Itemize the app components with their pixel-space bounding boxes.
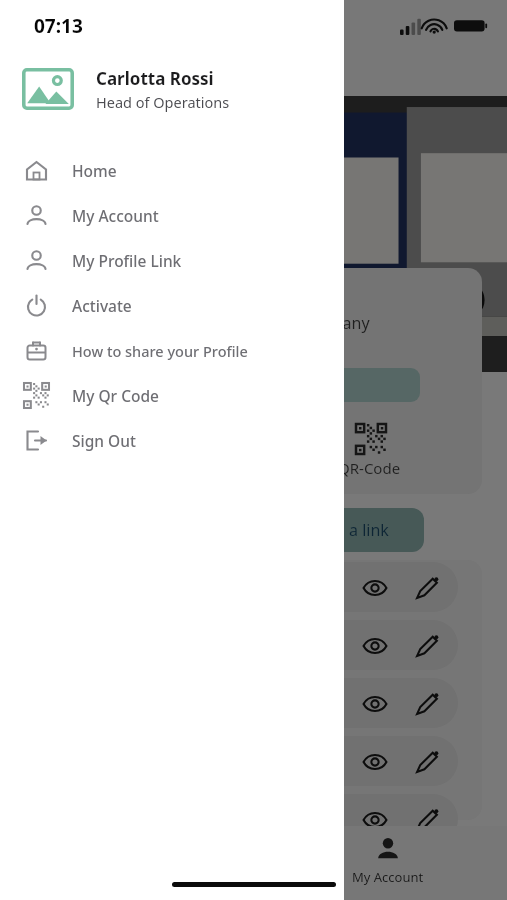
button[interactable]: Carlotta Rossi bbox=[20, 66, 344, 112]
button[interactable]: Preview link bbox=[250, 736, 458, 786]
staticText: My Account bbox=[72, 205, 159, 226]
button[interactable]: My Profile Link bbox=[0, 238, 344, 283]
button[interactable]: Preview link bbox=[362, 691, 388, 717]
staticText: How to share your Profile bbox=[72, 341, 248, 361]
button[interactable]: Add a link bbox=[280, 508, 424, 552]
button[interactable]: Edit link bbox=[414, 807, 440, 833]
button[interactable]: Home bbox=[0, 148, 344, 193]
staticText: Add a link bbox=[315, 519, 389, 541]
button[interactable]: Preview link bbox=[250, 562, 458, 612]
button[interactable]: Sign Out bbox=[0, 418, 344, 463]
staticText: My Account bbox=[352, 868, 424, 886]
button[interactable]: My Account bbox=[352, 836, 424, 886]
button[interactable]: How to share your Profile bbox=[0, 328, 344, 373]
button[interactable]: Preview link bbox=[250, 794, 458, 844]
button[interactable]: Preview link bbox=[362, 575, 388, 601]
staticText: Carlotta Rossi bbox=[96, 67, 214, 90]
staticText: 07:13 bbox=[34, 13, 83, 39]
staticText: Activate bbox=[72, 295, 132, 316]
button[interactable]: Preview link bbox=[362, 633, 388, 659]
button[interactable]: Preview link bbox=[250, 678, 458, 728]
staticText: Company bbox=[298, 312, 370, 334]
button[interactable]: Edit link bbox=[414, 575, 440, 601]
button[interactable]: Activate bbox=[0, 283, 344, 328]
button[interactable] bbox=[290, 368, 420, 402]
staticText: My Qr Code bbox=[72, 385, 160, 406]
button[interactable]: My Qr Code bbox=[0, 373, 344, 418]
button[interactable]: My Account bbox=[0, 193, 344, 238]
button[interactable]: Edit link bbox=[414, 749, 440, 775]
staticText: QR-Code bbox=[338, 458, 401, 478]
staticText: Sign Out bbox=[72, 430, 136, 451]
button[interactable]: Preview link bbox=[362, 749, 388, 775]
button[interactable]: Edit link bbox=[414, 691, 440, 717]
staticText: Home bbox=[72, 160, 117, 181]
staticText: My Profile Link bbox=[72, 250, 182, 271]
button[interactable]: Edit link bbox=[414, 633, 440, 659]
staticText: Head of Operations bbox=[96, 92, 230, 112]
button[interactable]: Preview link bbox=[250, 620, 458, 670]
button[interactable]: Preview link bbox=[362, 807, 388, 833]
